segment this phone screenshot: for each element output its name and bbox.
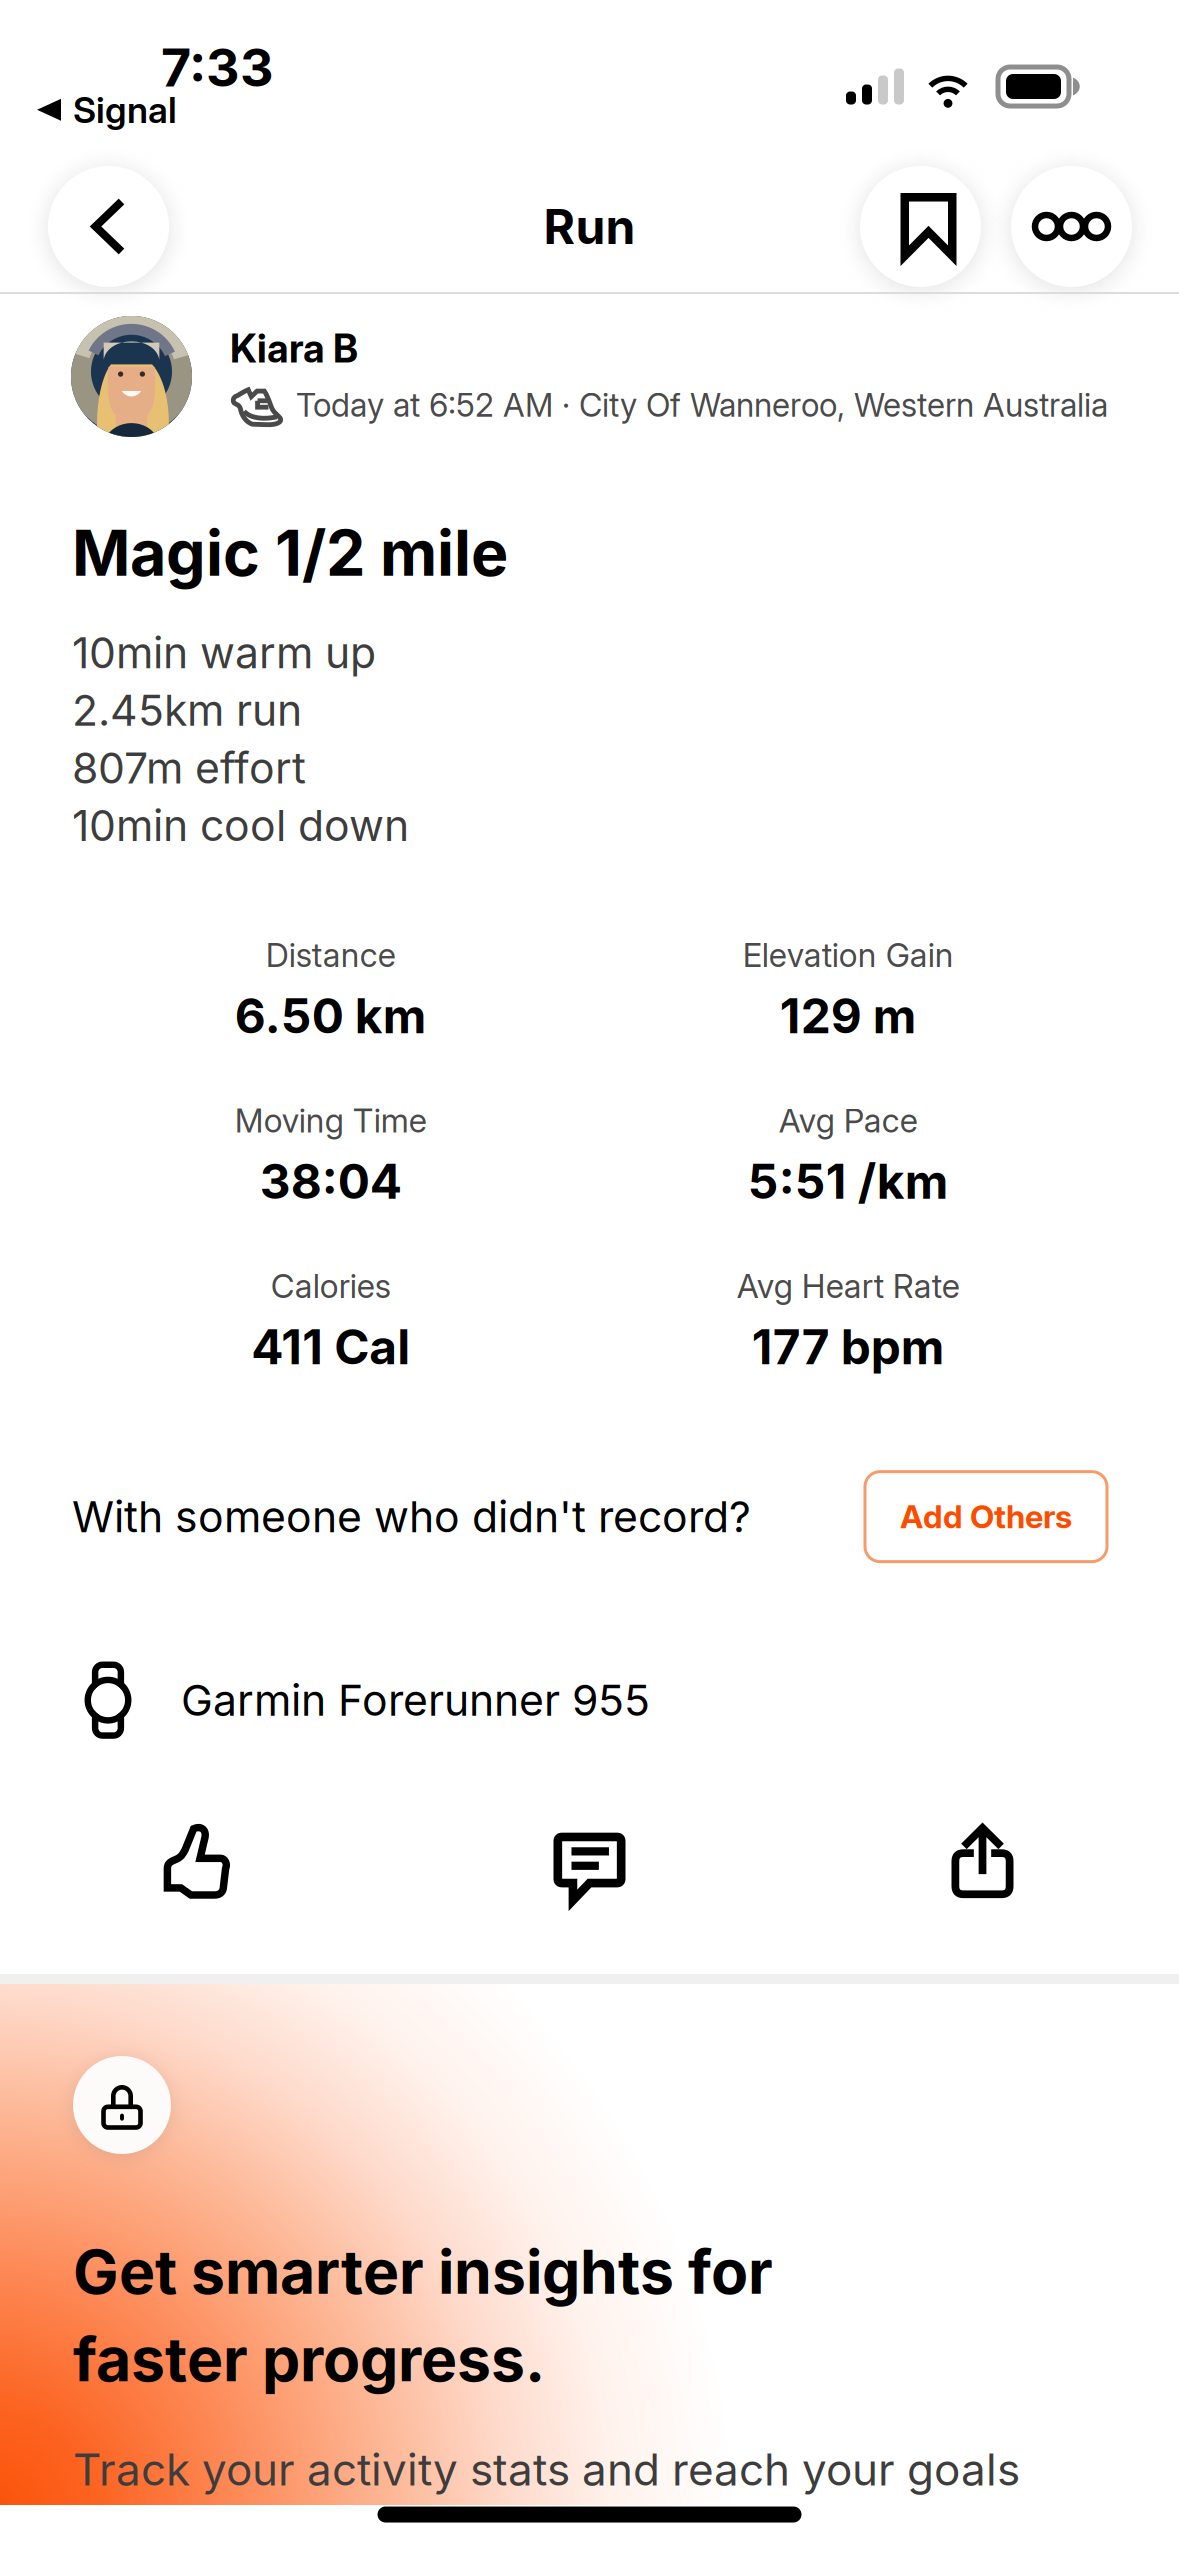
staticText: Run xyxy=(543,197,635,256)
staticText: Get smarter insights for xyxy=(73,2235,773,2308)
button[interactable]: Add Others xyxy=(865,1472,1107,1562)
staticText: 807m effort xyxy=(72,742,306,794)
staticText: Signal xyxy=(73,88,177,132)
button[interactable]: Give kudos xyxy=(0,1794,393,1928)
staticText: Today at 6:52 AM · City Of Wanneroo, Wes… xyxy=(296,385,1108,424)
staticText: 5:51 /km xyxy=(748,1152,949,1210)
staticText: Track your activity stats and reach your… xyxy=(73,2443,1020,2496)
staticText: Kiara B xyxy=(230,325,358,372)
staticText: 38:04 xyxy=(260,1152,402,1210)
staticText: Elevation Gain xyxy=(743,935,954,975)
staticText: 7:33 xyxy=(161,36,274,99)
staticText: 177 bpm xyxy=(752,1318,945,1376)
button[interactable]: Save activity xyxy=(854,160,987,293)
staticText: 129 m xyxy=(780,987,917,1045)
staticText: 411 Cal xyxy=(251,1318,410,1376)
staticText: 10min cool down xyxy=(72,800,409,851)
staticText: Moving Time xyxy=(235,1101,427,1140)
staticText: Add Others xyxy=(900,1497,1072,1536)
staticText: With someone who didn't record? xyxy=(72,1491,751,1542)
staticText: Magic 1/2 mile xyxy=(72,515,508,591)
staticText: Avg Pace xyxy=(779,1101,918,1140)
button[interactable]: Comment xyxy=(393,1797,786,1925)
staticText: 6.50 km xyxy=(235,987,427,1045)
staticText: Distance xyxy=(266,935,396,975)
button[interactable]: Share xyxy=(786,1795,1179,1926)
staticText: faster progress. xyxy=(73,2322,545,2396)
button[interactable]: Get smarter insights for xyxy=(0,1984,1179,2505)
staticText: Garmin Forerunner 955 xyxy=(181,1674,650,1726)
staticText: 10min warm up xyxy=(72,627,376,678)
staticText: 2.45km run xyxy=(72,684,302,736)
staticText: Avg Heart Rate xyxy=(737,1266,960,1306)
staticText: Calories xyxy=(271,1266,391,1306)
button[interactable]: Back xyxy=(42,160,175,293)
button[interactable]: More options xyxy=(1005,160,1138,293)
